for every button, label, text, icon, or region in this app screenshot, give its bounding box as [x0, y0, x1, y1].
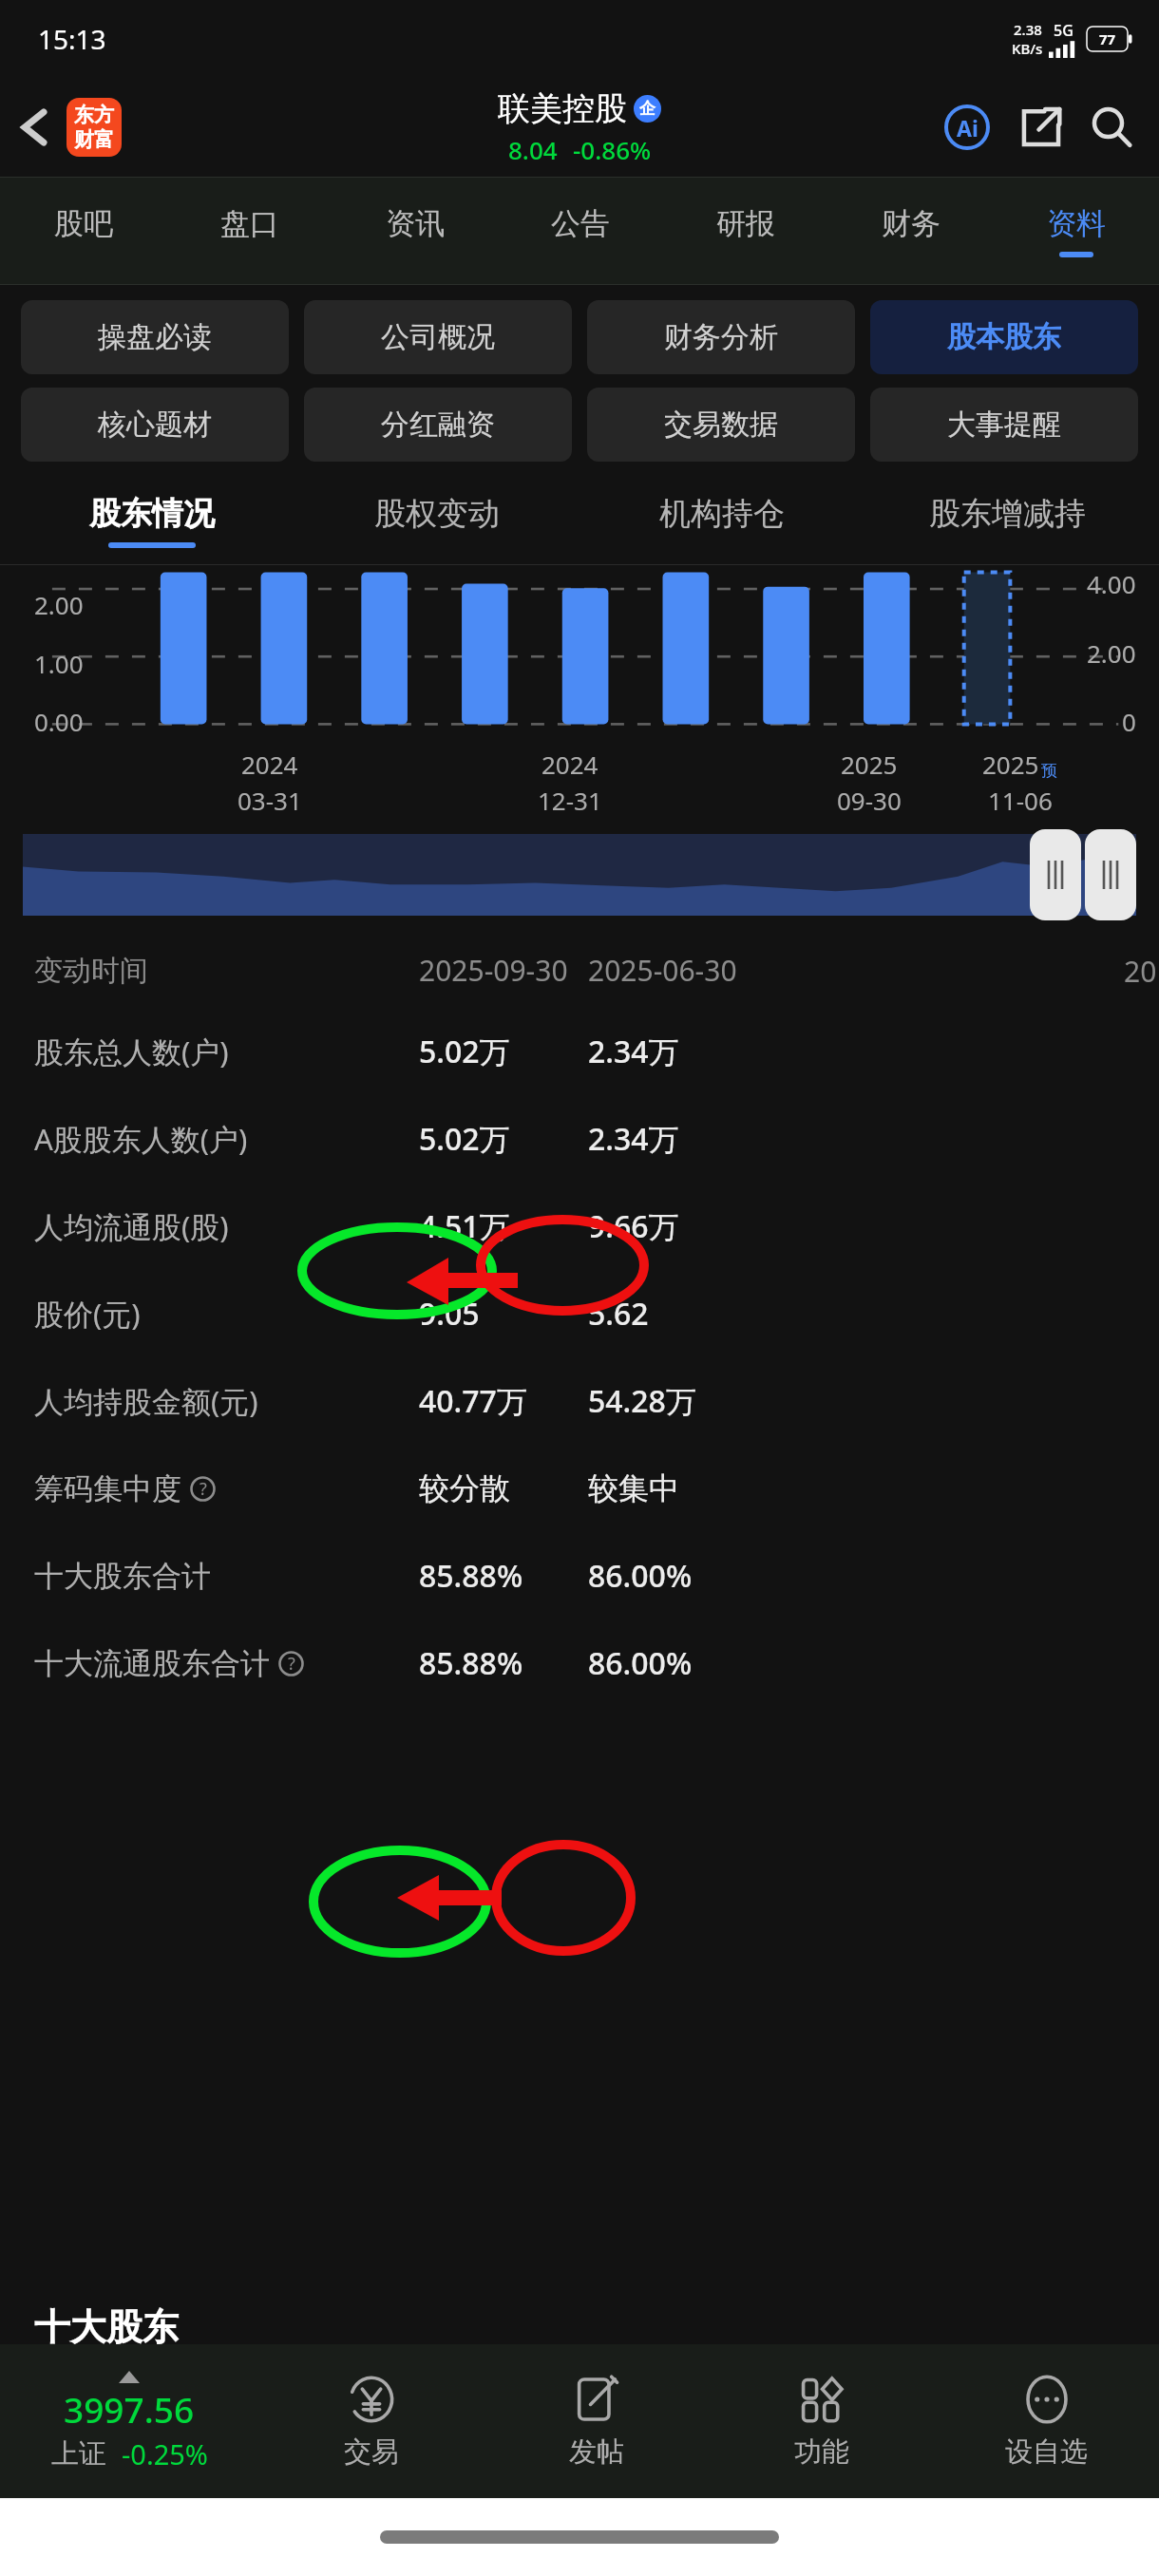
staticText: 人均流通股(股) [34, 1206, 229, 1246]
button[interactable]: 盘口 [166, 178, 332, 284]
staticText: 2025-09-30 [419, 951, 568, 990]
staticText: 15:13 [38, 21, 106, 57]
button[interactable]: 资料 [994, 178, 1159, 284]
staticText: 2.34万 [588, 1118, 679, 1160]
staticText: -0.86% [573, 133, 652, 166]
button[interactable]: 股价(元) [0, 1270, 1159, 1357]
staticText: 股东增减持 [929, 494, 1086, 534]
staticText: 大事提醒 [947, 407, 1061, 443]
button[interactable]: 交易 [258, 2344, 484, 2498]
button[interactable]: 股本股东 [870, 300, 1138, 374]
button[interactable]: 人均流通股(股) [0, 1183, 1159, 1270]
button[interactable]: 公告 [498, 178, 663, 284]
button[interactable]: AI 助手 [937, 97, 997, 158]
staticText: 机构持仓 [659, 494, 785, 534]
button[interactable]: 财务分析 [587, 300, 855, 374]
staticText: 09-30 [837, 784, 902, 817]
staticText: 股价(元) [34, 1294, 141, 1334]
staticText: ? [288, 1652, 295, 1676]
button[interactable]: 资讯 [332, 178, 498, 284]
staticText: 交易数据 [664, 407, 778, 443]
staticText: 股东情况 [89, 494, 215, 534]
staticText: 盘口 [220, 205, 279, 242]
button[interactable]: 机构持仓 [579, 477, 864, 564]
button[interactable]: 股权变动 [294, 477, 579, 564]
staticText: 5.02万 [419, 1118, 510, 1160]
button[interactable]: 财务 [828, 178, 994, 284]
staticText: 1.00 [34, 647, 84, 680]
staticText: 5G [1054, 20, 1073, 41]
button[interactable]: 筹码集中度 [0, 1445, 1159, 1532]
button[interactable]: A股股东人数(户) [0, 1095, 1159, 1183]
staticText: 资讯 [386, 205, 445, 242]
staticText: 财务分析 [664, 319, 778, 355]
button[interactable]: 十大股东合计 [0, 1532, 1159, 1619]
button[interactable]: 大事提醒 [870, 388, 1138, 462]
button[interactable]: 功能 [709, 2344, 934, 2498]
staticText: 86.00% [588, 1555, 693, 1597]
staticText: 发帖 [569, 2434, 624, 2470]
button[interactable]: 研报 [663, 178, 828, 284]
button[interactable]: 东方财富 [66, 98, 122, 157]
staticText: 2024 [241, 748, 298, 781]
staticText: 9.05 [419, 1293, 480, 1335]
button[interactable]: Share [1011, 97, 1072, 158]
staticText: 研报 [716, 205, 775, 242]
button[interactable]: 核心题材 [21, 388, 289, 462]
staticText: 上证 [51, 2436, 106, 2472]
staticText: 十大股东 [34, 2304, 179, 2350]
staticText: 交易 [344, 2434, 399, 2470]
staticText: 0.00 [34, 705, 84, 738]
staticText: 股东总人数(户) [34, 1032, 229, 1071]
button[interactable]: 股东情况 [9, 477, 294, 564]
staticText: 11-06 [988, 784, 1053, 817]
staticText: 东方 [74, 103, 114, 127]
button[interactable]: 十大流通股东合计 [0, 1619, 1159, 1707]
staticText: Ai [957, 113, 978, 142]
staticText: 40.77万 [419, 1380, 527, 1422]
staticText: 2024 [541, 748, 598, 781]
staticText: 2.00 [34, 588, 84, 621]
staticText: 财富 [74, 127, 114, 152]
staticText: 54.28万 [588, 1380, 696, 1422]
staticText: 85.88% [419, 1642, 523, 1684]
staticText: 十大股东合计 [34, 1558, 211, 1595]
button[interactable]: 操盘必读 [21, 300, 289, 374]
button[interactable]: 股东总人数(户) [0, 1008, 1159, 1095]
staticText: -0.25% [122, 2435, 208, 2472]
button[interactable]: Range handle [1030, 829, 1081, 920]
button[interactable]: 股东增减持 [864, 477, 1149, 564]
staticText: 2.00 [1087, 636, 1136, 670]
button[interactable]: Search [1081, 97, 1142, 158]
staticText: 2025 [841, 748, 898, 781]
staticText: 核心题材 [98, 407, 212, 443]
button[interactable]: 3997.56 [0, 2344, 258, 2498]
staticText: A股股东人数(户) [34, 1119, 248, 1159]
staticText: 十大流通股东合计 [34, 1645, 270, 1682]
staticText: 86.00% [588, 1642, 693, 1684]
button[interactable]: 股吧 [0, 178, 166, 284]
staticText: 股权变动 [374, 494, 500, 534]
staticText: 3997.56 [64, 2385, 195, 2433]
staticText: 77 [1099, 29, 1116, 48]
staticText: 预 [1041, 761, 1057, 781]
staticText: 较集中 [588, 1469, 679, 1507]
staticText: 9.66万 [588, 1205, 679, 1247]
button[interactable]: 分红融资 [304, 388, 572, 462]
button[interactable]: 公司概况 [304, 300, 572, 374]
staticText: 20 [1124, 952, 1157, 991]
button[interactable]: 发帖 [484, 2344, 709, 2498]
staticText: 功能 [794, 2434, 849, 2470]
button[interactable]: Back [6, 99, 63, 156]
staticText: 2025 [982, 748, 1039, 781]
button[interactable]: 交易数据 [587, 388, 855, 462]
button[interactable]: 人均持股金额(元) [0, 1357, 1159, 1445]
staticText: 2025-06-30 [588, 951, 737, 990]
staticText: 4.51万 [419, 1205, 510, 1247]
staticText: 0 [1122, 705, 1136, 738]
button[interactable]: 设自选 [934, 2344, 1159, 2498]
staticText: 资料 [1047, 205, 1106, 242]
button[interactable]: Range handle [1085, 829, 1136, 920]
staticText: 12-31 [538, 784, 602, 817]
staticText: 财务 [882, 205, 940, 242]
